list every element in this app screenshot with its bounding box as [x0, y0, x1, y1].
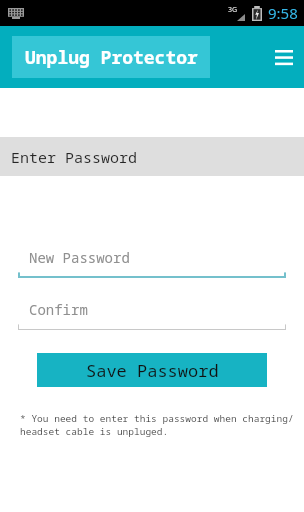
staticText: Save Password: [86, 359, 219, 382]
button[interactable]: Menu: [264, 37, 304, 77]
staticText: Confirm: [29, 300, 88, 319]
button[interactable]: Save Password: [37, 353, 267, 387]
button[interactable]: Unplug Protector: [12, 36, 210, 78]
staticText: New Password: [29, 248, 130, 267]
staticText: Enter Password: [11, 147, 138, 167]
staticText: * You need to enter this password when c…: [20, 412, 298, 438]
staticText: Unplug Protector: [25, 45, 198, 70]
staticText: 3G: [228, 5, 238, 15]
button[interactable]: Confirm: [18, 300, 286, 330]
button[interactable]: New Password: [18, 248, 286, 278]
staticText: 9:58: [268, 3, 298, 23]
